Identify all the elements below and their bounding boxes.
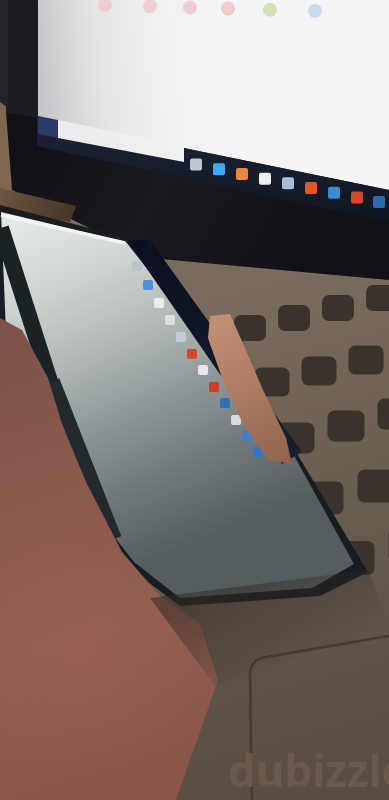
- staticText: dubizzle: [228, 740, 389, 800]
